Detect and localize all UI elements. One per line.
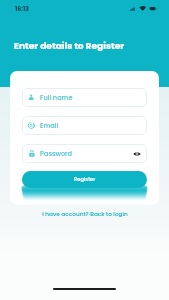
button[interactable]: Password <box>22 144 147 163</box>
staticText: 16:13 <box>15 4 30 13</box>
staticText: Email <box>40 121 59 130</box>
button[interactable]: Email <box>22 116 147 135</box>
staticText: Password <box>40 149 73 158</box>
staticText: Full name <box>40 93 73 102</box>
button[interactable]: Full name <box>22 88 147 107</box>
other: Show password <box>133 150 141 158</box>
staticText: Enter details to Register <box>14 39 125 52</box>
staticText: I have account? Back to login <box>42 210 128 218</box>
button[interactable]: I have account? Back to login <box>0 207 169 221</box>
staticText: Register <box>74 176 96 183</box>
button[interactable]: Register <box>22 171 147 188</box>
